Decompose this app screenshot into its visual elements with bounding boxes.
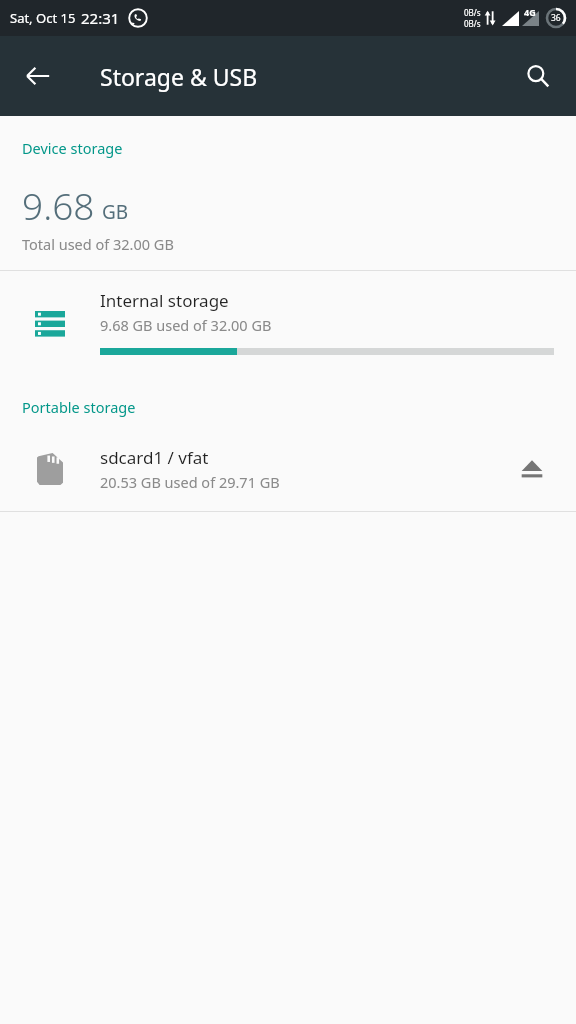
staticText: Total used of 32.00 GB [22,234,174,254]
staticText: sdcard1 / vfat [100,446,209,469]
staticText: 36 [551,12,561,24]
button[interactable]: Eject [508,445,556,493]
staticText: 0B/s [464,7,481,18]
staticText: Internal storage [100,289,229,312]
staticText: 9.68 [22,180,95,230]
staticText: Device storage [22,138,123,158]
staticText: Sat, Oct 15 [10,9,76,27]
button[interactable]: Back [12,50,64,102]
button[interactable]: Search [512,50,564,102]
staticText: 20.53 GB used of 29.71 GB [100,472,280,492]
button[interactable]: Internal storage [0,271,576,375]
staticText: Storage & USB [100,61,258,92]
staticText: GB [102,199,129,225]
staticText: Portable storage [22,397,136,417]
staticText: 22:31 [81,8,120,28]
staticText: 9.68 GB used of 32.00 GB [100,315,272,335]
staticText: 4G [524,6,536,18]
staticText: 0B/s [464,18,481,29]
button[interactable]: sdcard1 / vfat [0,431,576,511]
